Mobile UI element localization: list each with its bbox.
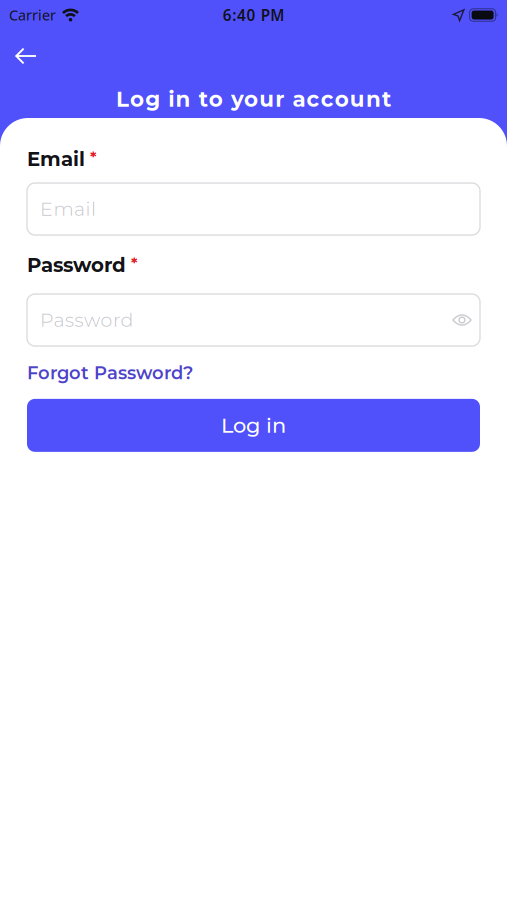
button[interactable]: Log in bbox=[27, 399, 480, 452]
button[interactable]: Forgot Password? bbox=[27, 362, 193, 384]
textField[interactable]: Email bbox=[27, 183, 480, 235]
staticText: 6:40 PM bbox=[223, 5, 284, 25]
staticText: Email bbox=[40, 197, 96, 221]
staticText: Forgot Password? bbox=[27, 362, 193, 384]
staticText: Log in to your account bbox=[116, 86, 391, 112]
button[interactable]: Back bbox=[8, 41, 44, 71]
staticText: Password bbox=[27, 253, 126, 277]
staticText: Password bbox=[40, 308, 133, 332]
textField[interactable]: Password bbox=[27, 294, 480, 346]
staticText: Log in bbox=[221, 413, 286, 438]
button[interactable]: Show password bbox=[447, 305, 477, 335]
staticText: * bbox=[131, 254, 138, 272]
staticText: Email bbox=[27, 147, 85, 171]
staticText: * bbox=[90, 148, 97, 166]
staticText: Carrier bbox=[9, 5, 56, 25]
